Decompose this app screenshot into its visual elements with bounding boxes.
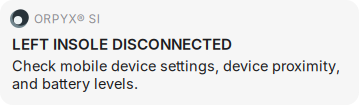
staticText: LEFT INSOLE DISCONNECTED bbox=[12, 35, 232, 53]
staticText: Check mobile device settings, device pro… bbox=[12, 57, 340, 92]
button[interactable]: ORPYX® SI bbox=[0, 0, 359, 105]
staticText: ORPYX® SI bbox=[34, 12, 100, 26]
